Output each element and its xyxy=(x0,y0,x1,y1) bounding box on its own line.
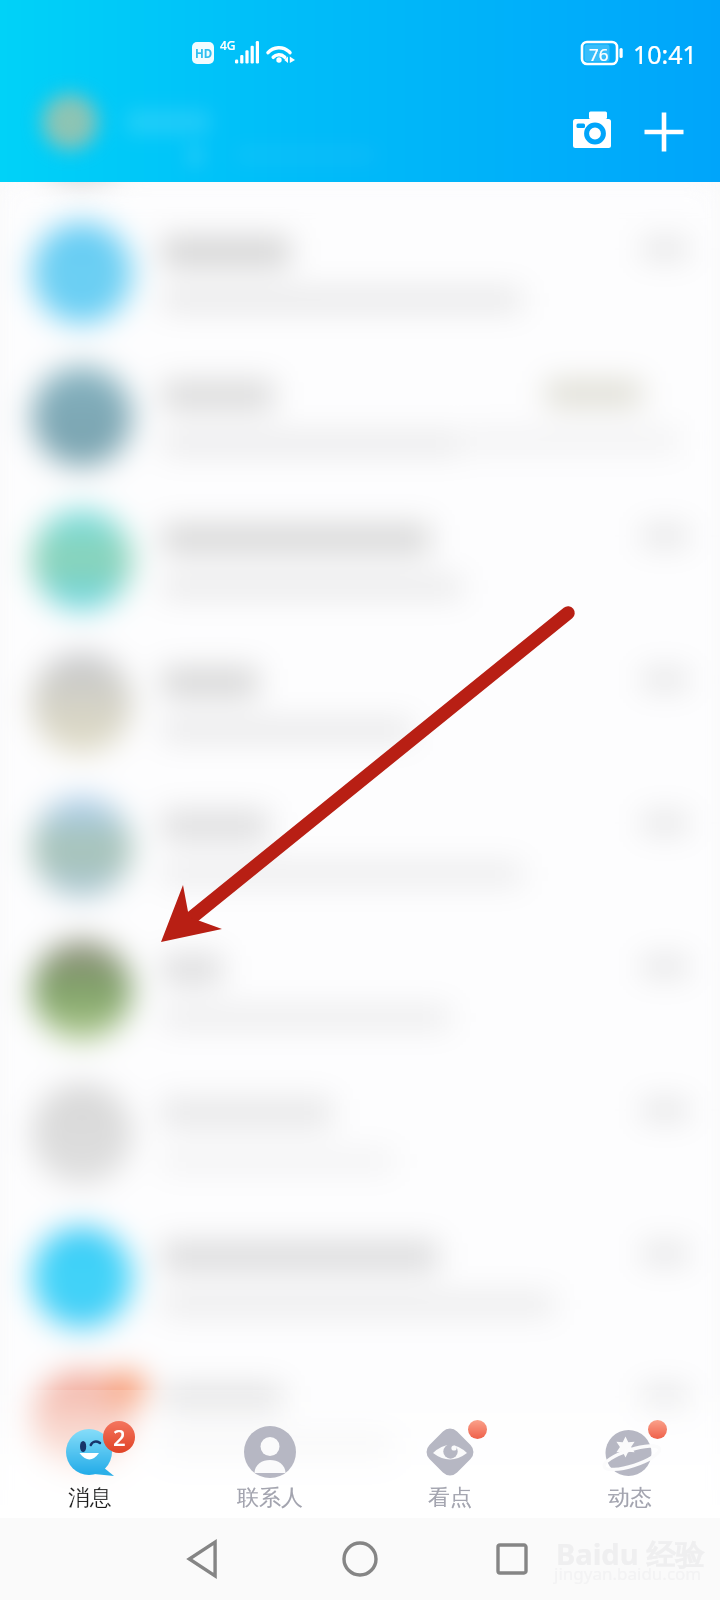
button[interactable]: 联系人 xyxy=(180,1390,360,1518)
staticText: 动态 xyxy=(608,1484,652,1512)
staticText: 2 xyxy=(113,1422,126,1452)
staticText: HD xyxy=(195,46,213,62)
staticText: 10:41 xyxy=(633,37,697,71)
staticText: 消息 xyxy=(68,1484,112,1512)
button[interactable]: 2 xyxy=(0,1390,180,1518)
staticText: 4G xyxy=(220,37,236,53)
button[interactable]: 动态 xyxy=(540,1390,720,1518)
button[interactable]: Home xyxy=(332,1531,388,1587)
button[interactable]: Back xyxy=(177,1531,233,1587)
staticText: 76 xyxy=(589,43,609,66)
button[interactable]: Camera xyxy=(560,98,630,168)
staticText: 看点 xyxy=(428,1484,472,1512)
staticText: jingyan.baidu.com xyxy=(554,1562,702,1585)
staticText: 联系人 xyxy=(237,1484,303,1512)
button[interactable]: Add xyxy=(630,98,700,168)
staticText: Baidu 经验 xyxy=(556,1534,705,1574)
button[interactable]: Recent apps xyxy=(484,1531,540,1587)
button[interactable]: 看点 xyxy=(360,1390,540,1518)
